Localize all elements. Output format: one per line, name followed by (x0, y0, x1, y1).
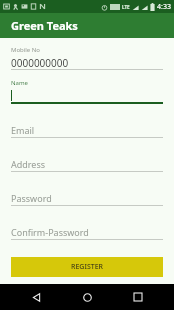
button[interactable]: REGISTER (11, 257, 163, 277)
staticText: REGISTER (71, 262, 103, 272)
staticText: LTE (122, 4, 130, 10)
button[interactable]: Password (0, 184, 174, 206)
button[interactable]: Address (0, 150, 174, 172)
staticText: Address (11, 158, 46, 170)
staticText: 0000000000 (11, 56, 69, 68)
button[interactable]: Email (0, 116, 174, 138)
staticText: Confirm-Password (11, 226, 89, 238)
staticText: 4:33 (157, 2, 171, 12)
staticText: Password (11, 192, 52, 204)
staticText: Name (11, 79, 28, 87)
staticText: Mobile No (11, 46, 40, 54)
button[interactable]: Home (72, 284, 102, 310)
staticText: Green Teaks (11, 18, 78, 33)
button[interactable]: Back (21, 284, 51, 310)
button[interactable]: Mobile No (0, 46, 174, 70)
button[interactable]: Name (0, 79, 174, 104)
button[interactable]: Recent apps (123, 284, 153, 310)
staticText: Email (11, 124, 35, 136)
button[interactable]: Confirm-Password (0, 218, 174, 240)
